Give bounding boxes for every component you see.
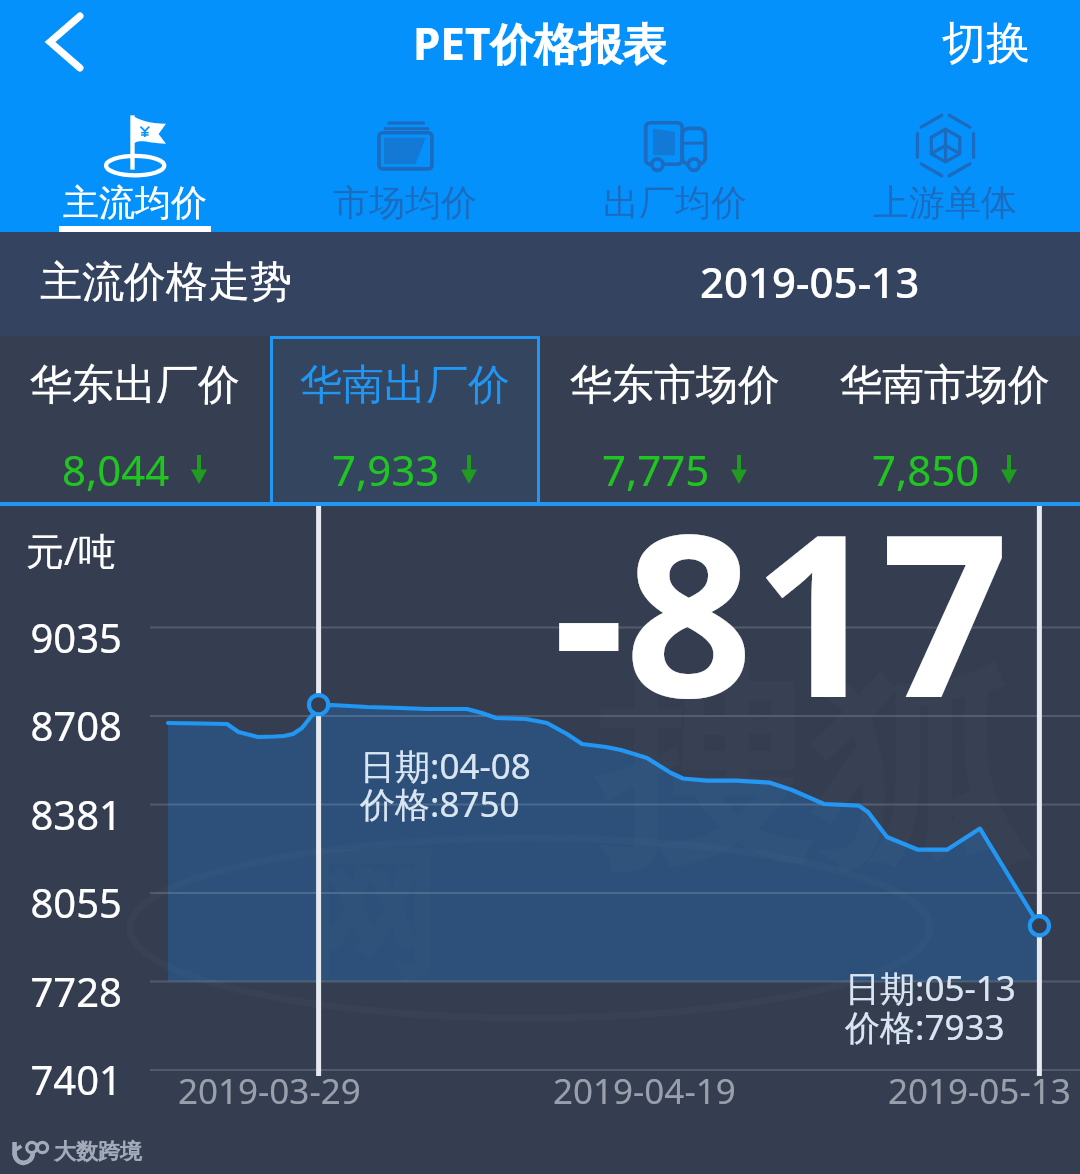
button[interactable]: 华南出厂价 [270, 336, 540, 502]
staticText: 华东市场价 [570, 359, 780, 412]
button[interactable]: 华南市场价 [810, 336, 1080, 502]
button[interactable]: 出厂均价 [540, 100, 810, 232]
staticText: 8708 [16, 698, 122, 752]
staticText: 搜狐 [596, 636, 1026, 907]
staticText: 2019-03-29 [178, 1067, 361, 1115]
staticText: 出厂均价 [603, 180, 747, 225]
staticText: 华南市场价 [840, 359, 1050, 412]
staticText: 切换 [942, 16, 1030, 71]
staticText: 日期:05-13 [845, 964, 1016, 1012]
button[interactable]: 华东市场价 [540, 336, 810, 502]
button[interactable]: 华东出厂价 [0, 336, 270, 502]
staticText: 8,044 [62, 441, 170, 498]
staticText: 8055 [16, 875, 122, 929]
staticText: -817 [553, 458, 1010, 763]
button[interactable]: Back [12, 0, 122, 88]
staticText: 2019-05-13 [700, 253, 920, 310]
staticText: 市场均价 [333, 180, 477, 225]
staticText: 华东出厂价 [30, 359, 240, 412]
staticText: PET价格报表 [413, 13, 667, 73]
staticText: 华南出厂价 [300, 359, 510, 412]
staticText: 价格:7933 [845, 1003, 1005, 1051]
staticText: 2019-05-13 [888, 1067, 1071, 1115]
staticText: 9035 [16, 610, 122, 664]
button[interactable]: 切换 [942, 16, 1030, 71]
staticText: 主流均价 [63, 180, 207, 225]
staticText: 价格:8750 [360, 780, 520, 828]
staticText: 上游单体 [873, 180, 1017, 225]
staticText: 7,775 [602, 441, 710, 498]
staticText: 网 [300, 828, 440, 1004]
button[interactable]: 主流均价 [0, 100, 270, 232]
staticText: 日期:04-08 [360, 742, 531, 790]
staticText: 大数跨境 [54, 1138, 142, 1166]
staticText: 7728 [16, 964, 122, 1018]
staticText: 元/吨 [26, 524, 117, 576]
staticText: 2019-04-19 [553, 1067, 736, 1115]
staticText: 8381 [16, 787, 122, 841]
staticText: 主流价格走势 [40, 256, 292, 309]
button[interactable]: 上游单体 [810, 100, 1080, 232]
staticText: 7,933 [332, 441, 440, 498]
staticText: 7,850 [872, 441, 980, 498]
button[interactable]: 市场均价 [270, 100, 540, 232]
staticText: 7401 [16, 1052, 122, 1106]
